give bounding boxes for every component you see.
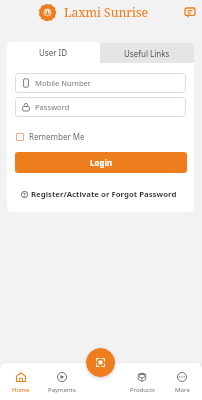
staticText: Useful Links (124, 48, 170, 59)
button[interactable]: Products (122, 363, 162, 400)
staticText: Products (130, 386, 155, 394)
button[interactable]: Mobile Number (15, 73, 186, 93)
staticText: Mobile Number (35, 78, 91, 88)
button[interactable]: Password (15, 97, 186, 117)
staticText: Remember Me (29, 131, 85, 142)
button[interactable]: Home (0, 363, 41, 400)
staticText: Password (35, 102, 70, 112)
staticText: Home (12, 386, 30, 394)
button[interactable]: Login (15, 152, 187, 173)
staticText: Payments (48, 386, 76, 394)
button[interactable]: More (162, 363, 202, 400)
button[interactable]: User ID (7, 42, 100, 63)
staticText: Register/Activate or Forgot Password (31, 189, 177, 200)
staticText: ? (23, 191, 26, 198)
staticText: More (175, 386, 190, 394)
staticText: Laxmi Sunrise (64, 4, 148, 21)
button[interactable]: Messages (182, 5, 197, 20)
button[interactable]: ? (7, 188, 192, 200)
button[interactable]: Scan QR code (86, 348, 115, 377)
button[interactable]: Useful Links (100, 43, 194, 63)
button[interactable]: Payments (41, 363, 82, 400)
staticText: User ID (39, 47, 68, 58)
staticText: Login (90, 157, 113, 168)
button[interactable]: Remember Me (16, 131, 85, 142)
